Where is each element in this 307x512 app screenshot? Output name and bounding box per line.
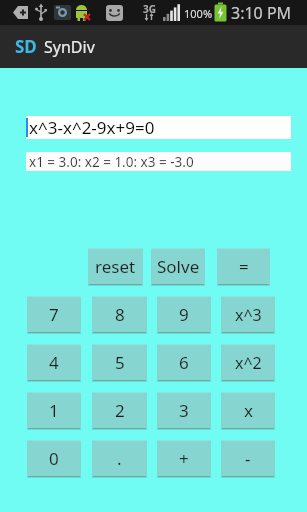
staticText: SynDiv bbox=[44, 36, 95, 58]
staticText: 0 bbox=[49, 447, 59, 470]
staticText: x^3 bbox=[235, 304, 262, 326]
staticText: Solve bbox=[157, 255, 200, 278]
button[interactable]: 7 bbox=[27, 296, 81, 333]
staticText: 3:10 PM bbox=[231, 2, 292, 24]
staticText: 8 bbox=[115, 303, 125, 326]
button[interactable]: 6 bbox=[157, 344, 211, 381]
button[interactable]: . bbox=[92, 440, 147, 477]
button[interactable]: x^3-x^2-9x+9=0 bbox=[26, 116, 291, 139]
button[interactable]: 1 bbox=[27, 392, 81, 429]
button[interactable]: 3 bbox=[157, 392, 211, 429]
staticText: x^2 bbox=[235, 352, 262, 374]
staticText: 100% bbox=[184, 6, 213, 21]
staticText: SD bbox=[15, 35, 37, 58]
button[interactable]: 5 bbox=[92, 344, 147, 381]
staticText: = bbox=[239, 255, 249, 278]
button[interactable]: 4 bbox=[27, 344, 81, 381]
button[interactable]: - bbox=[221, 440, 275, 477]
button[interactable]: 9 bbox=[157, 296, 211, 333]
staticText: 6 bbox=[179, 351, 189, 374]
staticText: x^3-x^2-9x+9=0 bbox=[29, 116, 155, 139]
button[interactable]: Solve bbox=[151, 248, 205, 285]
button[interactable]: + bbox=[157, 440, 211, 477]
staticText: x1 = 3.0: x2 = 1.0: x3 = -3.0 bbox=[29, 153, 194, 171]
button[interactable]: 8 bbox=[92, 296, 147, 333]
staticText: - bbox=[245, 447, 251, 470]
button[interactable]: 0 bbox=[27, 440, 81, 477]
staticText: + bbox=[179, 447, 189, 470]
staticText: x bbox=[244, 399, 253, 422]
staticText: 1 bbox=[49, 399, 59, 422]
staticText: 5 bbox=[115, 351, 125, 374]
button[interactable]: x^3 bbox=[221, 296, 275, 333]
staticText: 9 bbox=[179, 303, 189, 326]
button[interactable]: x^2 bbox=[221, 344, 275, 381]
button[interactable]: 2 bbox=[92, 392, 147, 429]
staticText: reset bbox=[95, 255, 136, 278]
staticText: 4 bbox=[49, 351, 59, 374]
button[interactable]: reset bbox=[88, 248, 143, 285]
staticText: 3 bbox=[179, 399, 189, 422]
staticText: 2 bbox=[115, 399, 125, 422]
button[interactable]: x bbox=[221, 392, 275, 429]
staticText: 3G bbox=[143, 2, 156, 16]
staticText: 7 bbox=[49, 303, 59, 326]
staticText: . bbox=[117, 447, 122, 470]
button[interactable]: = bbox=[217, 248, 270, 285]
